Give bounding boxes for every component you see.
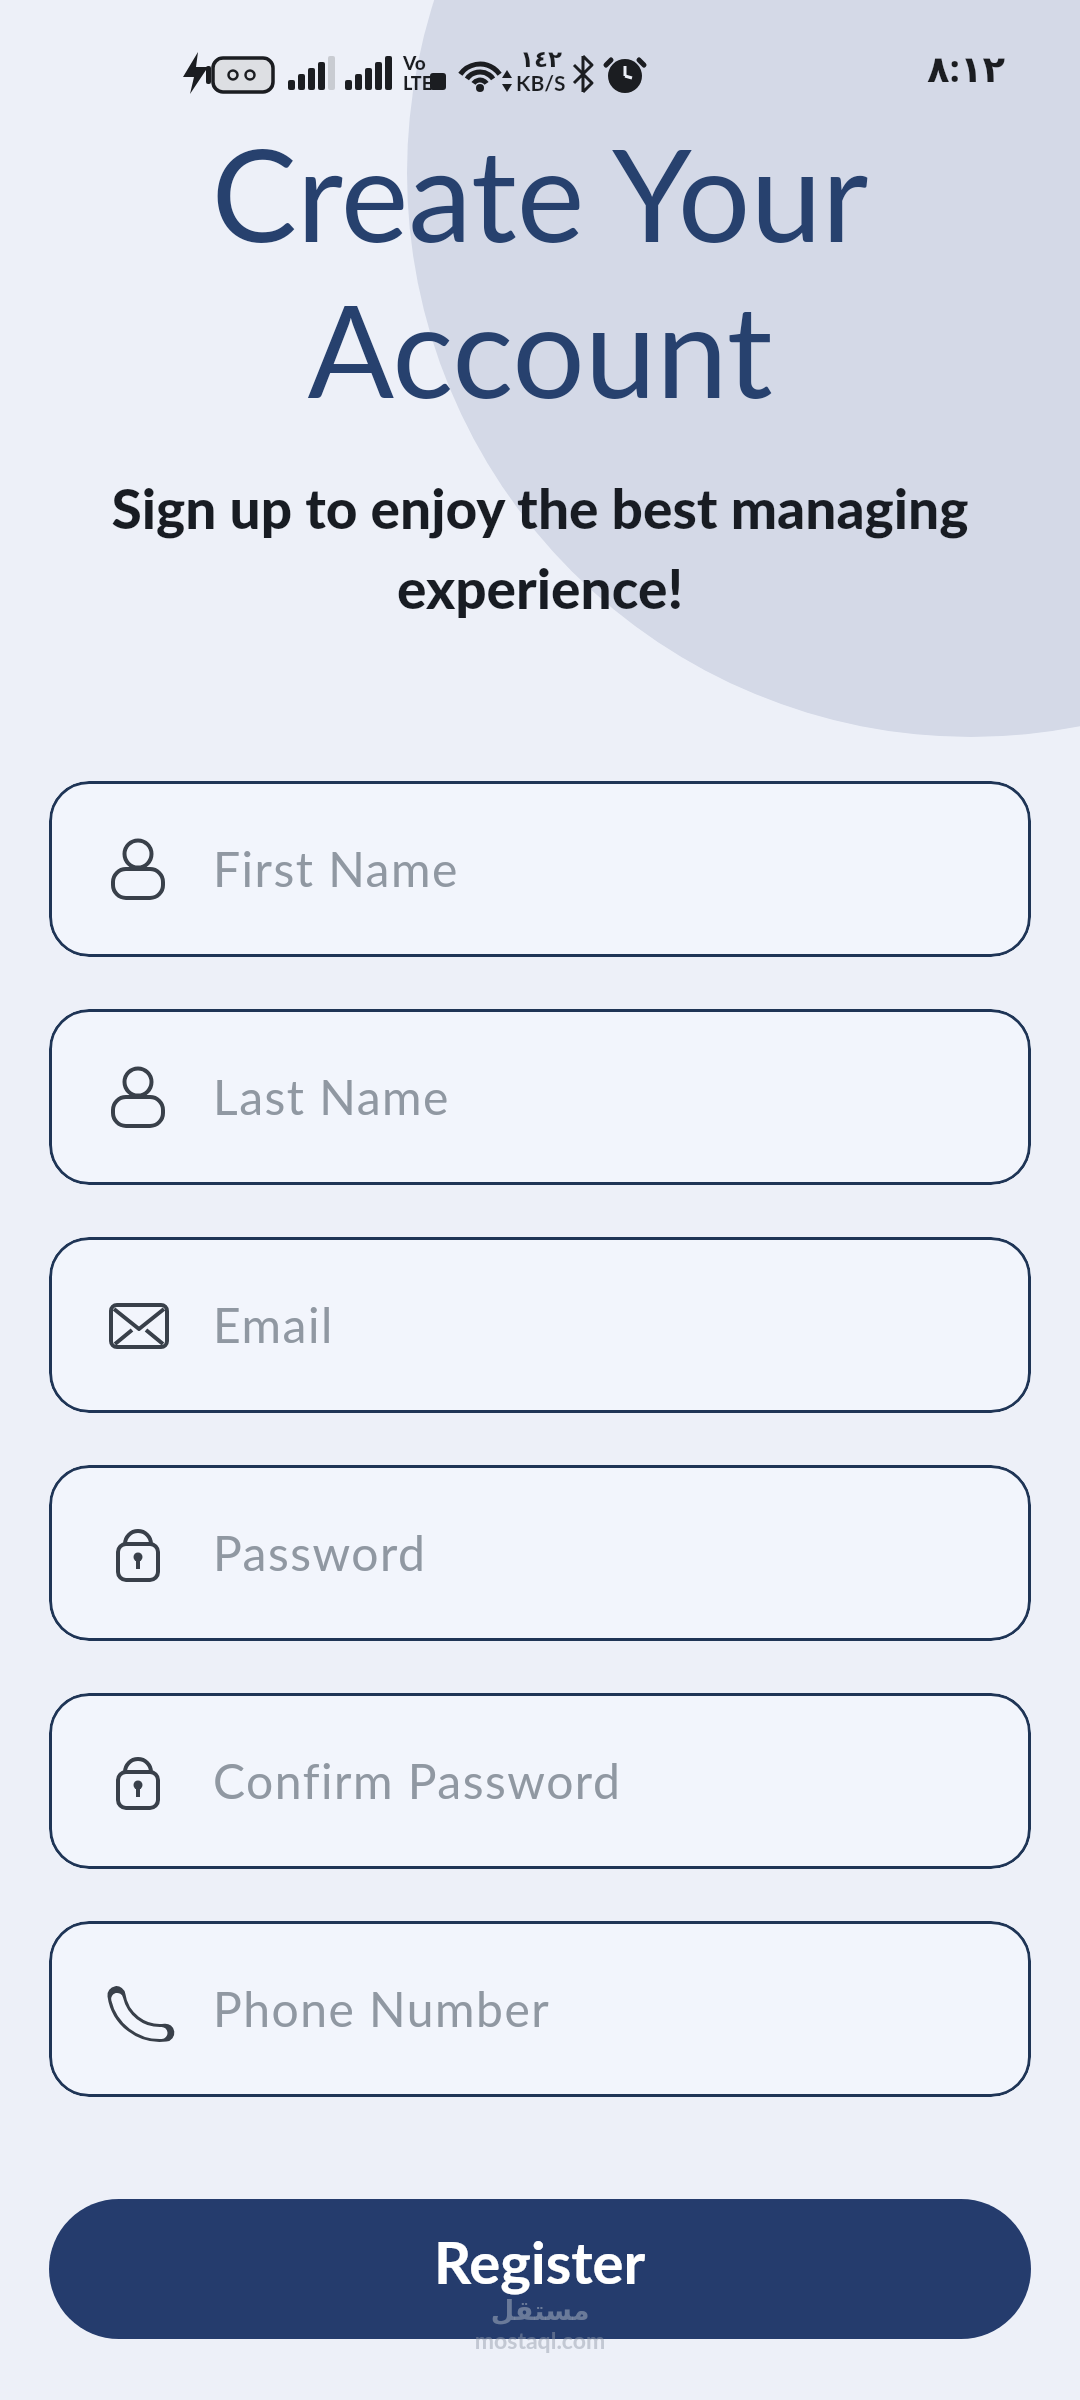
staticText: Create Your [0, 116, 1080, 270]
staticText: Email [213, 1296, 334, 1354]
button[interactable]: Register [49, 2199, 1031, 2339]
staticText: Account [0, 272, 1080, 426]
staticText: مستقل [0, 2295, 1080, 2326]
staticText: Phone Number [213, 1980, 551, 2038]
staticText: KB/S [516, 70, 566, 95]
staticText: Last Name [213, 1068, 450, 1126]
staticText: Vo [403, 51, 426, 74]
staticText: LTE [403, 72, 433, 94]
button[interactable]: Last Name [49, 1009, 1031, 1185]
button[interactable]: Phone Number [49, 1921, 1031, 2097]
button[interactable]: Confirm Password [49, 1693, 1031, 1869]
staticText: ٨:١٢ [927, 42, 1006, 92]
staticText: experience! [0, 555, 1080, 621]
staticText: Password [213, 1524, 427, 1582]
staticText: mostaql.com [0, 2326, 1080, 2354]
staticText: Sign up to enjoy the best managing [0, 475, 1080, 541]
staticText: Register [434, 2227, 646, 2297]
button[interactable]: Password [49, 1465, 1031, 1641]
staticText: First Name [213, 840, 459, 898]
staticText: Confirm Password [213, 1752, 622, 1810]
button[interactable]: Email [49, 1237, 1031, 1413]
staticText: ١٤٢ [520, 46, 563, 73]
button[interactable]: First Name [49, 781, 1031, 957]
